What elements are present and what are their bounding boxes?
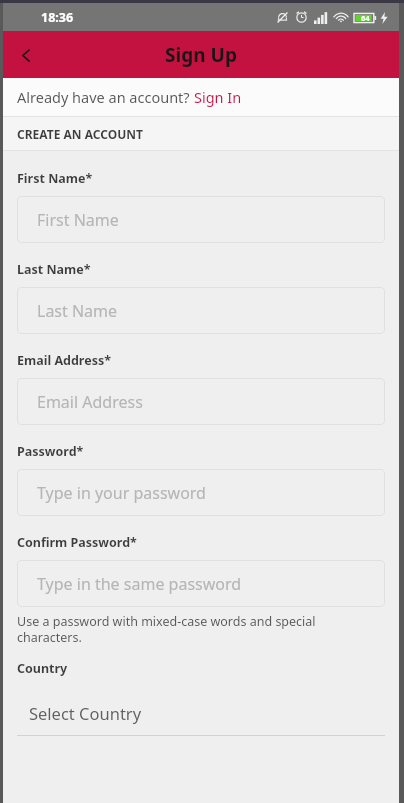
staticText: 18:36 [41, 9, 74, 26]
button[interactable]: Type in the same password [17, 560, 385, 607]
staticText: CREATE AN ACCOUNT [17, 126, 143, 142]
staticText: Sign Up [165, 42, 237, 68]
staticText: Last Name* [17, 261, 91, 278]
staticText: Sign In [194, 87, 242, 107]
button[interactable]: Email Address [17, 378, 385, 425]
staticText: First Name* [17, 170, 93, 187]
staticText: Country [17, 660, 68, 677]
staticText: Last Name [37, 300, 118, 322]
button[interactable]: Already have an account? [3, 78, 399, 116]
staticText: Type in the same password [37, 573, 242, 595]
button[interactable]: Back [3, 32, 49, 78]
staticText: Confirm Password* [17, 534, 137, 551]
staticText: First Name [37, 209, 119, 231]
staticText: Already have an account? [17, 87, 194, 107]
staticText: 64 [361, 13, 370, 23]
staticText: Password* [17, 443, 84, 460]
button[interactable]: Last Name [17, 287, 385, 334]
staticText: Email Address* [17, 352, 111, 369]
button[interactable]: Type in your password [17, 469, 385, 516]
staticText: Select Country [29, 702, 142, 724]
staticText: Type in your password [37, 482, 206, 504]
staticText: Use a password with mixed-case words and… [17, 613, 316, 645]
button[interactable]: Select Country [17, 690, 385, 736]
button[interactable]: First Name [17, 196, 385, 243]
staticText: Email Address [37, 391, 143, 413]
